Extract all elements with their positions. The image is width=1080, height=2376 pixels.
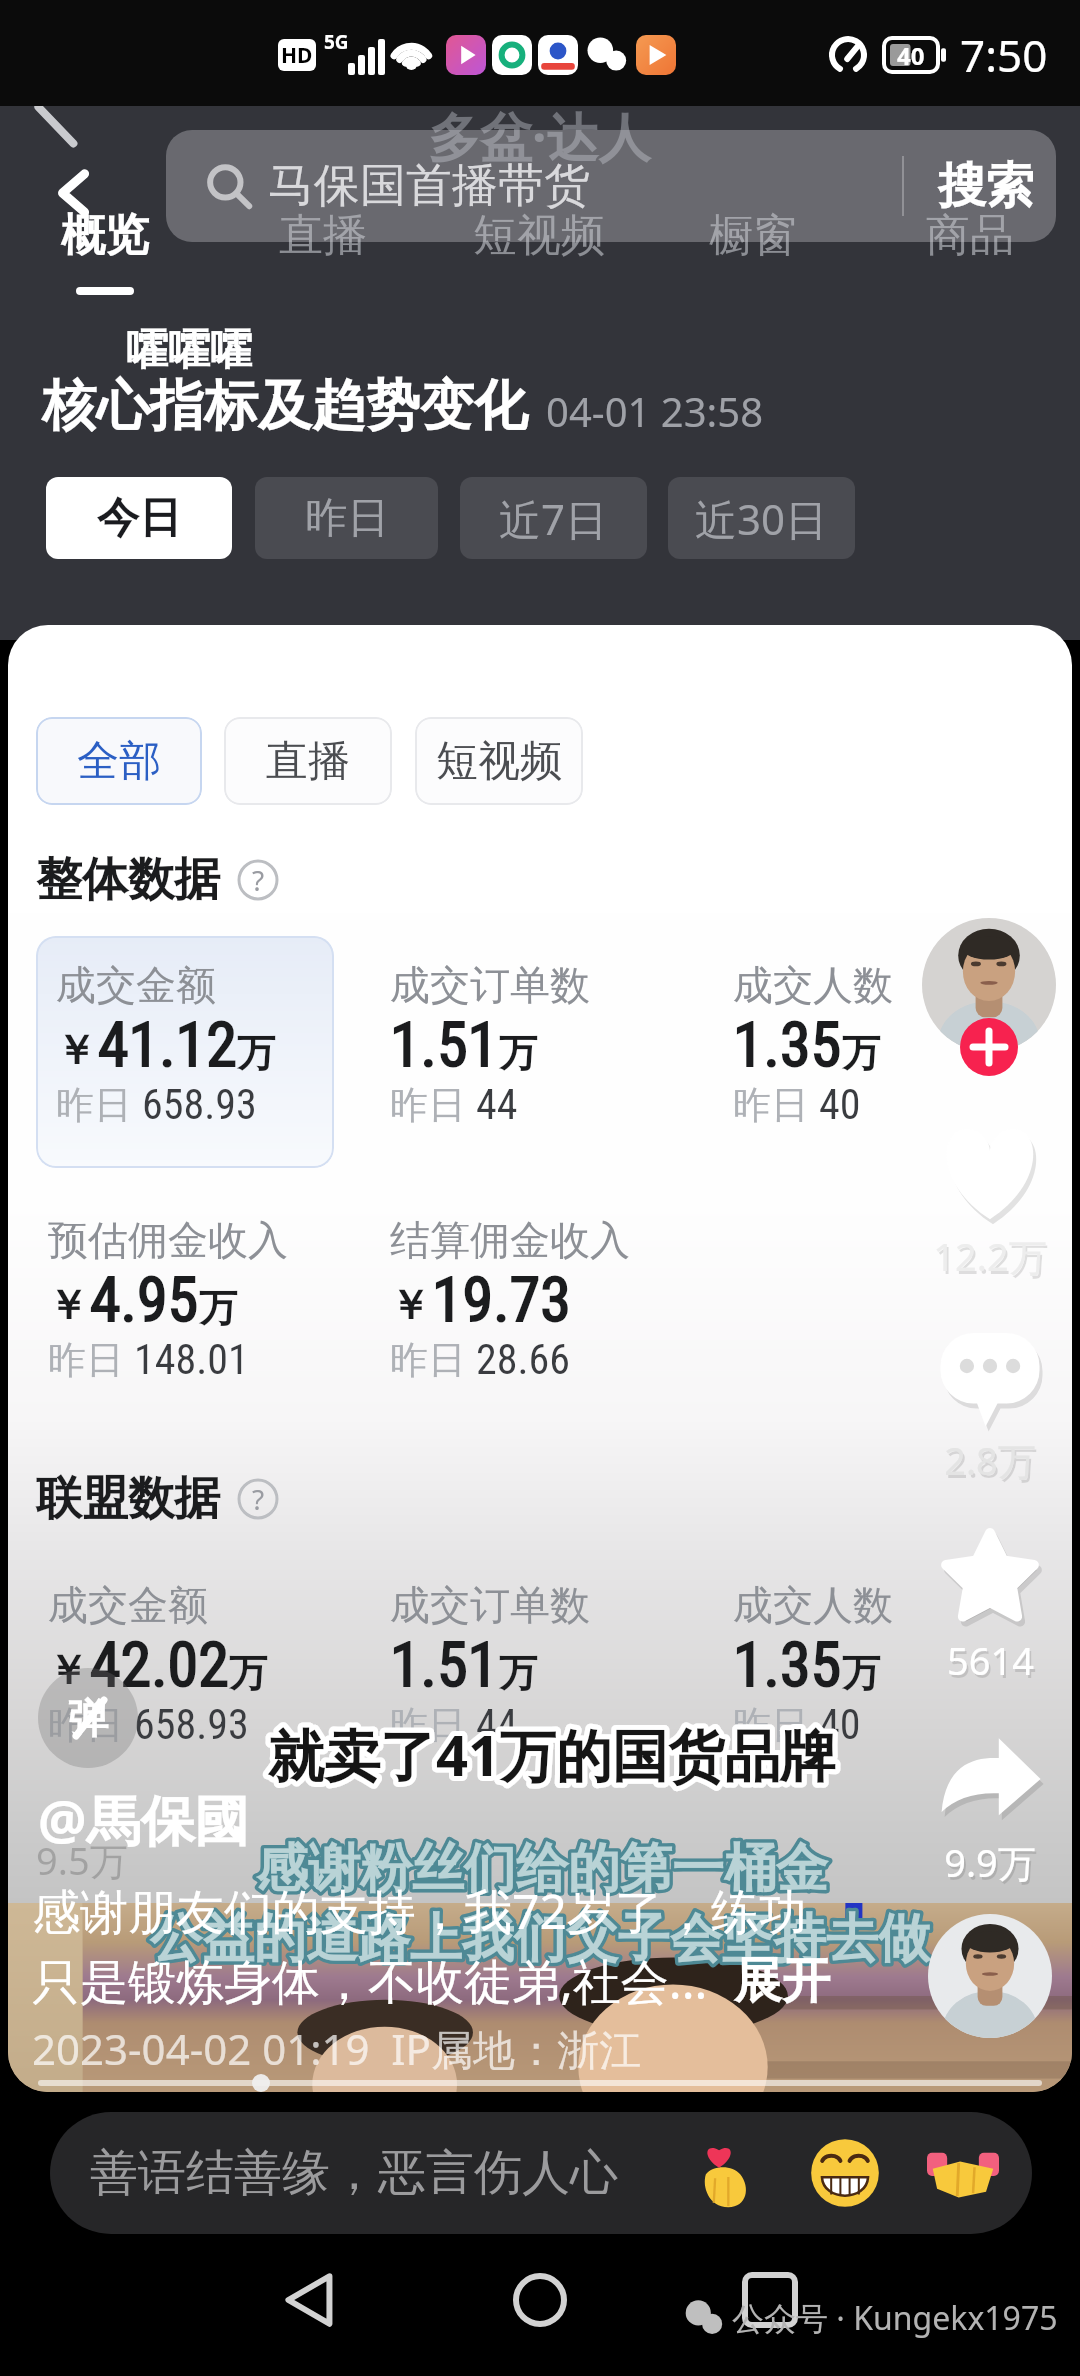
button[interactable]: 主页 — [492, 2252, 588, 2348]
staticText: 今日 — [97, 492, 181, 545]
button[interactable]: 整体数据 — [36, 851, 280, 909]
staticText: ￥ — [390, 1280, 430, 1330]
staticText: 整体数据 — [36, 851, 220, 909]
staticText: 就卖了41万的国货品牌 — [268, 1716, 837, 1792]
staticText: 核心指标及趋势变化 — [42, 372, 528, 440]
staticText: 概览 — [61, 208, 149, 263]
staticText: 感谢粉丝们给的第一桶金 — [256, 1836, 828, 1902]
staticText: 40 — [819, 1700, 861, 1749]
button[interactable]: @馬保國 — [38, 1782, 249, 1856]
button[interactable]: 马保国首播带货 — [166, 130, 1056, 242]
staticText: 658.93 — [134, 1700, 249, 1749]
button[interactable]: 2.8万 — [930, 1322, 1050, 1486]
staticText: 4.95 — [90, 1263, 199, 1336]
staticText: 万 — [237, 1029, 275, 1077]
staticText: 9.9万 — [946, 1839, 1038, 1891]
staticText: 1.35 — [733, 1008, 842, 1081]
button[interactable]: 近30日 — [668, 477, 855, 559]
staticText: HD — [281, 41, 313, 70]
button[interactable]: 橱窗 — [653, 208, 853, 263]
button[interactable]: 全部 — [36, 717, 202, 805]
staticText: 41.12 — [98, 1008, 237, 1081]
button[interactable]: 近7日 — [460, 477, 647, 559]
button[interactable]: 直播 — [223, 208, 423, 263]
staticText: 04-01 23:58 — [546, 384, 764, 438]
staticText: 感谢朋友们的支持，我72岁了，练功 — [32, 1878, 807, 1944]
staticText: 成交人数 — [733, 960, 893, 1010]
staticText: 嚯嚯嚯 — [126, 324, 252, 377]
staticText: 40 — [897, 39, 925, 72]
button[interactable]: 善语结善缘，恶言伤人心 — [50, 2112, 1032, 2234]
staticText: 近30日 — [695, 490, 828, 547]
button[interactable]: 展开 — [734, 1951, 830, 2011]
button[interactable]: 用户头像 — [928, 1914, 1052, 2038]
staticText: 658.93 — [142, 1080, 257, 1129]
staticText: 昨日 — [733, 1697, 819, 1749]
staticText: 成交订单数 — [390, 960, 590, 1010]
staticText: 昨日 — [390, 1077, 476, 1129]
button[interactable]: 大笑 — [808, 2136, 882, 2210]
button[interactable]: 返回 — [30, 148, 120, 238]
button[interactable]: 最近任务 — [722, 2252, 818, 2348]
staticText: 昨日 — [48, 1697, 134, 1749]
staticText: 昨日 — [305, 492, 389, 545]
staticText: 公众号 · Kungekx1975 — [732, 2296, 1058, 2340]
staticText: 公益的道路上我们父子会坚持去做 — [150, 1906, 930, 1972]
staticText: 只是锻炼身体，不收徒弟,社会... — [32, 1948, 708, 2014]
staticText: 直播 — [279, 208, 367, 263]
staticText: 近7日 — [499, 490, 608, 547]
staticText: 公益的道路上我们父子会坚持去做 — [150, 1906, 930, 1972]
button[interactable]: 握手 — [926, 2136, 1000, 2210]
staticText: 5614 — [949, 1637, 1036, 1689]
staticText: 结算佣金收入 — [390, 1215, 630, 1265]
button[interactable]: 头像 — [922, 918, 1056, 1052]
staticText: 成交人数 — [733, 1580, 893, 1630]
staticText: 商品 — [926, 208, 1014, 263]
staticText: 全部 — [77, 735, 161, 788]
staticText: 42.02 — [90, 1628, 229, 1701]
button[interactable]: 短视频 — [439, 208, 639, 263]
staticText: 万 — [229, 1649, 267, 1697]
staticText: ￥ — [48, 1645, 88, 1695]
staticText: 9.5万 — [36, 1834, 128, 1886]
button[interactable]: 9.9万 — [930, 1724, 1050, 1888]
button[interactable]: 概览 — [5, 208, 205, 295]
staticText: 善语结善缘，恶言伤人心 — [90, 2143, 618, 2203]
button[interactable]: 昨日 — [255, 477, 438, 559]
button[interactable]: 12.2万 — [930, 1118, 1050, 1282]
staticText: 5G — [324, 29, 349, 55]
staticText: ? — [252, 1480, 265, 1518]
button[interactable]: 返回 — [262, 2252, 358, 2348]
staticText: 5614 — [947, 1634, 1034, 1686]
button[interactable]: 联盟数据 — [36, 1470, 280, 1528]
staticText: 44 — [476, 1700, 518, 1749]
staticText: 感谢粉丝们给的第一桶金 — [256, 1836, 828, 1902]
staticText: 44 — [476, 1080, 518, 1129]
button[interactable]: 弹幕开关 — [38, 1668, 138, 1768]
staticText: 1.51 — [390, 1628, 499, 1701]
staticText: 预估佣金收入 — [48, 1215, 288, 1265]
staticText: 1.35 — [733, 1628, 842, 1701]
button[interactable]: 爱心手势 — [690, 2136, 764, 2210]
staticText: 昨日 — [390, 1697, 476, 1749]
staticText: 12.2万 — [933, 1230, 1047, 1282]
staticText: 短视频 — [473, 208, 605, 263]
button[interactable]: 直播 — [224, 717, 392, 805]
staticText: 2023-04-02 01:19 IP属地：浙江 — [32, 2020, 642, 2077]
button[interactable]: 短视频 — [415, 717, 583, 805]
button[interactable] — [36, 936, 334, 1168]
button[interactable]: 今日 — [46, 477, 232, 559]
button[interactable]: 5614 — [930, 1522, 1050, 1686]
staticText: 万 — [842, 1029, 880, 1077]
staticText: 成交金额 — [48, 1580, 208, 1630]
staticText: 成交订单数 — [390, 1580, 590, 1630]
staticText: 马保国首播带货 — [268, 157, 590, 215]
staticText: 7:50 — [960, 25, 1048, 85]
staticText: 2.8万 — [946, 1437, 1038, 1489]
staticText: 12.2万 — [935, 1233, 1049, 1285]
button[interactable]: 商品 — [870, 208, 1070, 263]
staticText: ￥ — [48, 1280, 88, 1330]
staticText: 万 — [499, 1649, 537, 1697]
staticText: 弹 — [68, 1693, 108, 1743]
staticText: 成交金额 — [56, 960, 216, 1010]
